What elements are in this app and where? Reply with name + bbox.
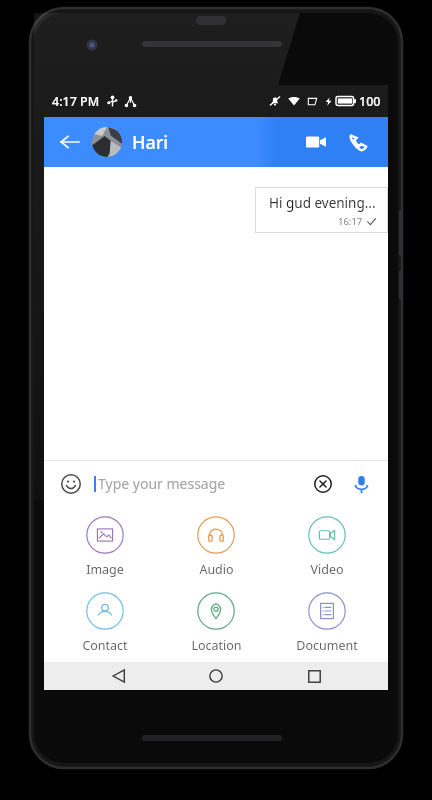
button[interactable]: Video — [277, 514, 377, 580]
staticText: Hari — [132, 130, 169, 155]
button[interactable]: Back — [96, 662, 142, 690]
staticText: Video — [310, 561, 344, 578]
button[interactable]: Recent apps — [291, 662, 337, 690]
button[interactable]: Image — [55, 514, 155, 580]
button[interactable]: Contact — [55, 590, 155, 656]
staticText: 4:17 PM — [52, 93, 100, 110]
button[interactable]: Contact photo — [92, 127, 122, 157]
button[interactable]: Emoji — [56, 469, 86, 499]
staticText: Contact — [82, 637, 128, 654]
button[interactable]: Voice input — [346, 469, 376, 499]
button[interactable]: Back — [54, 126, 86, 158]
button[interactable]: Audio — [166, 514, 266, 580]
staticText: 100 — [359, 93, 381, 110]
button[interactable]: Hi gud evening... — [255, 187, 388, 233]
staticText: Audio — [199, 561, 234, 578]
staticText: Type your message — [98, 474, 308, 493]
staticText: 16:17 — [338, 215, 363, 228]
button[interactable]: Voice call — [340, 124, 376, 160]
button[interactable]: Location — [166, 590, 266, 656]
button[interactable]: Document — [277, 590, 377, 656]
staticText: Hi gud evening... — [269, 194, 376, 212]
staticText: Image — [86, 561, 124, 578]
button[interactable]: Home — [193, 662, 239, 690]
button[interactable]: Video call — [298, 124, 334, 160]
staticText: Document — [296, 637, 358, 654]
staticText: Location — [191, 637, 242, 654]
button[interactable]: Clear — [308, 469, 338, 499]
